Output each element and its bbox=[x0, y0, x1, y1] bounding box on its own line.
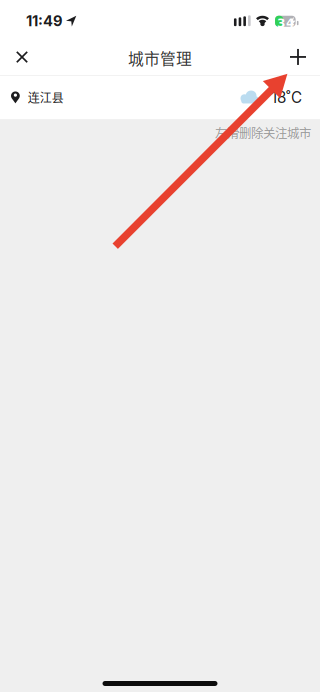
button[interactable]: 连江县 bbox=[0, 76, 320, 119]
staticText: 11:49 bbox=[26, 12, 63, 30]
staticText: 城市管理 bbox=[128, 46, 192, 69]
staticText: 34 bbox=[277, 16, 295, 30]
button[interactable]: Close bbox=[0, 43, 44, 75]
staticText: 连江县 bbox=[28, 89, 64, 106]
staticText: 18˚C bbox=[271, 88, 302, 107]
button[interactable]: Add city bbox=[276, 43, 320, 75]
staticText: 左滑删除关注城市 bbox=[215, 124, 311, 142]
